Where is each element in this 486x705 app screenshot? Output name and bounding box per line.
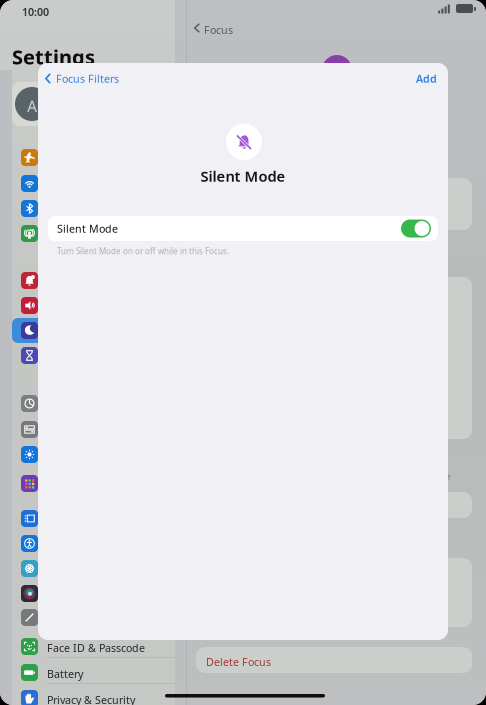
button[interactable]: Silent Mode <box>48 216 438 241</box>
staticText: Face ID & Passcode <box>47 641 145 655</box>
staticText: Add <box>416 71 437 86</box>
staticText: Focus Filters <box>56 71 119 86</box>
staticText: Turn Silent Mode on or off while in this… <box>57 246 229 256</box>
button[interactable]: Focus Filters <box>41 66 129 91</box>
staticText: Delete Focus <box>206 655 271 669</box>
staticText: Settings <box>12 43 95 70</box>
staticText: le <box>443 470 450 482</box>
staticText: Privacy & Security <box>47 693 135 705</box>
staticText: Silent Mode <box>57 221 118 236</box>
staticText: 10:00 <box>22 5 49 19</box>
staticText: Silent Mode <box>200 166 285 186</box>
staticText: A <box>27 96 37 117</box>
staticText: Focus <box>204 23 233 37</box>
button[interactable]: Add <box>408 66 448 91</box>
staticText: Battery <box>47 667 83 681</box>
